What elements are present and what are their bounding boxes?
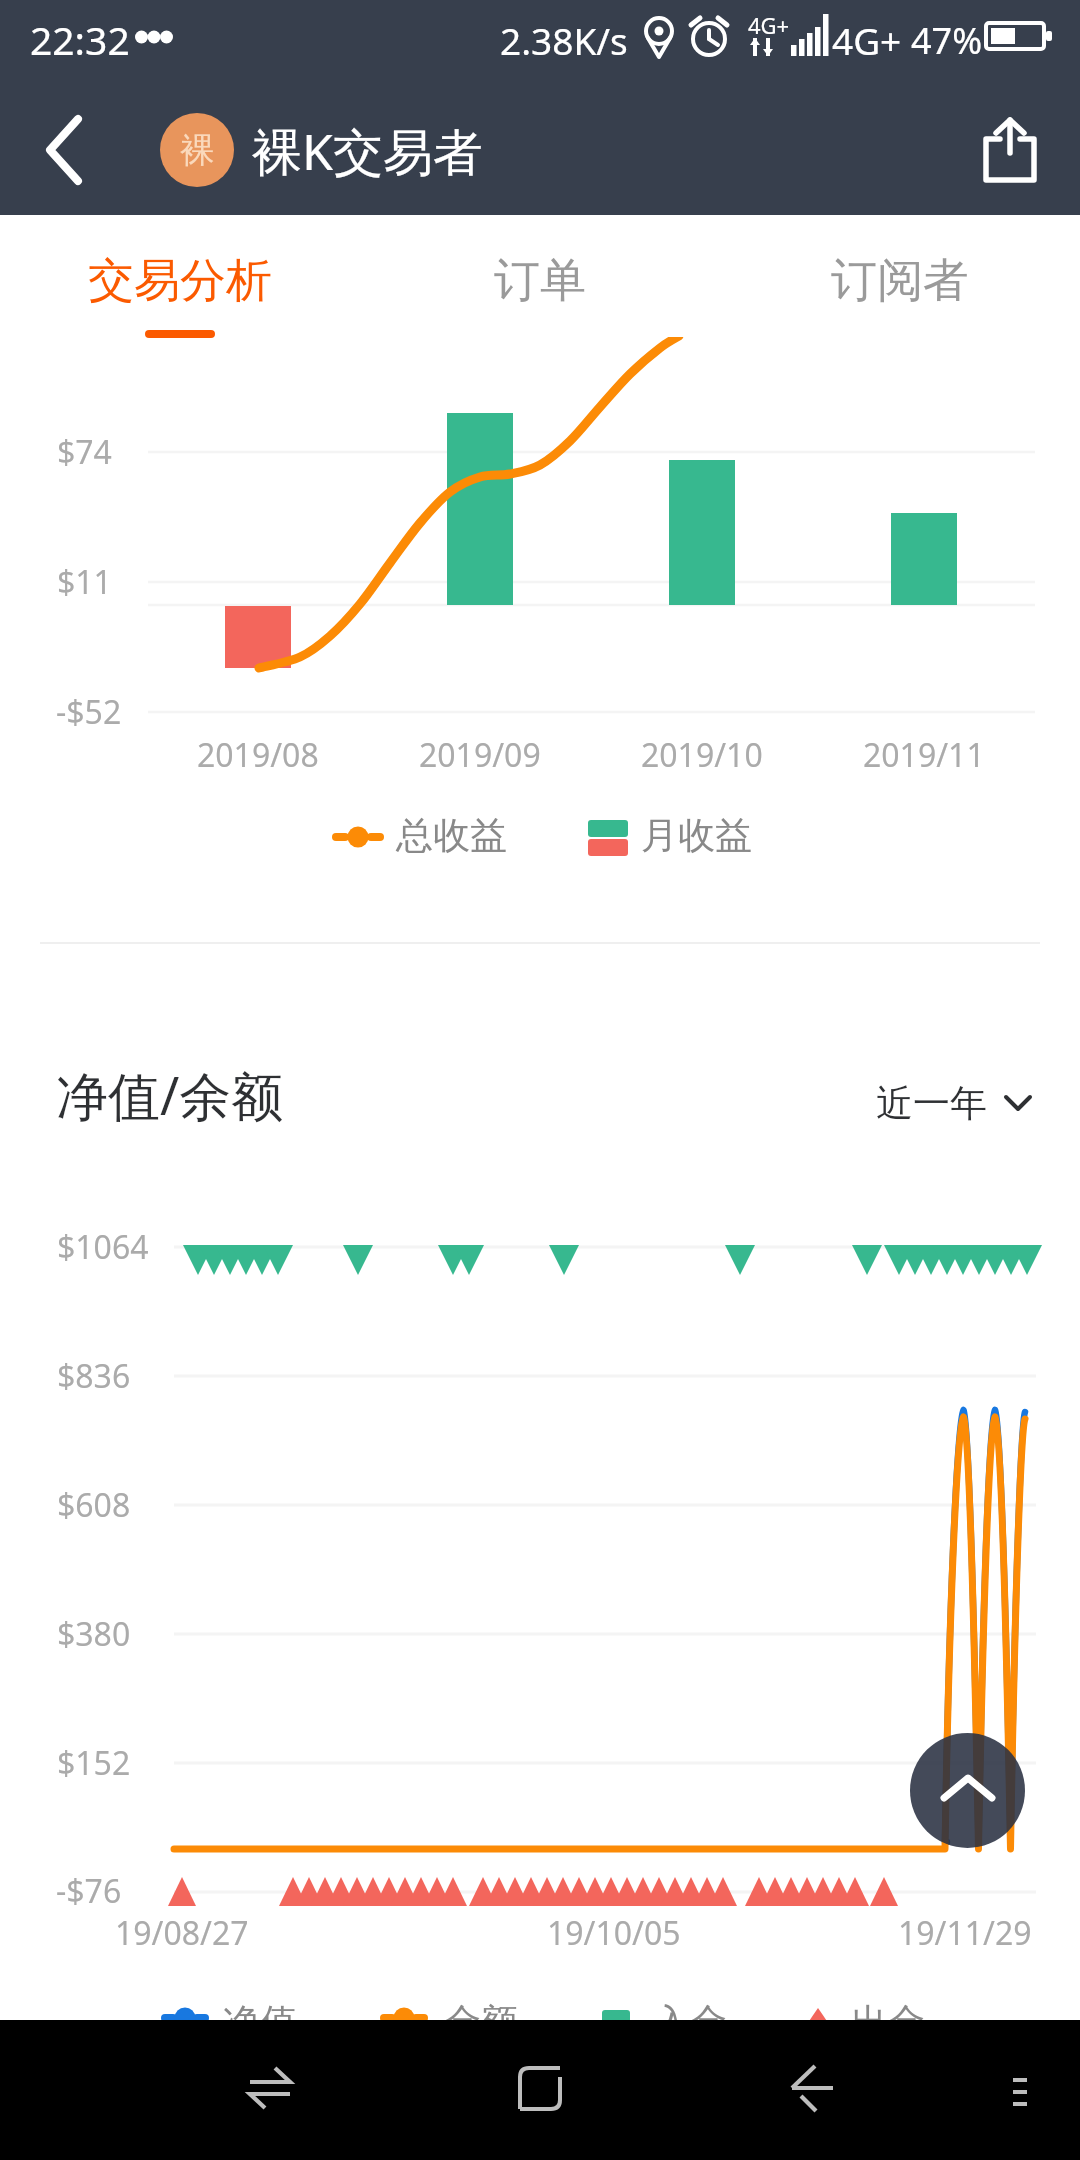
staticText: $836: [57, 1354, 131, 1398]
button[interactable]: 近一年: [862, 1068, 1042, 1138]
staticText: 裸: [180, 129, 214, 172]
button[interactable]: Back: [8, 94, 120, 206]
button[interactable]: 订阅者: [720, 215, 1080, 337]
staticText: -$76: [56, 1869, 122, 1913]
staticText: 订阅者: [831, 252, 969, 310]
staticText: 47%: [911, 16, 983, 65]
staticText: 近一年: [876, 1080, 987, 1127]
staticText: 4G+: [748, 10, 790, 40]
staticText: $380: [57, 1612, 131, 1656]
staticText: 裸K交易者: [252, 117, 483, 185]
staticText: 出金: [851, 1999, 925, 2046]
staticText: 19/11/29: [898, 1911, 1032, 1955]
button[interactable]: Switch apps: [210, 2028, 330, 2148]
button[interactable]: More options: [960, 2028, 1080, 2148]
button[interactable]: 交易分析: [0, 215, 360, 337]
staticText: -$52: [56, 690, 122, 734]
staticText: $74: [57, 430, 112, 474]
staticText: 入金: [653, 1999, 727, 2046]
staticText: 交易分析: [88, 252, 272, 310]
staticText: 4G+: [832, 15, 902, 65]
staticText: 总收益: [396, 812, 507, 859]
staticText: 2019/09: [419, 733, 541, 777]
staticText: 2.38K/s: [500, 15, 628, 65]
staticText: 2019/11: [863, 733, 985, 777]
button[interactable]: Recents: [480, 2028, 600, 2148]
staticText: 订单: [494, 252, 586, 310]
button[interactable]: Share: [954, 84, 1066, 194]
staticText: 净值: [223, 1999, 297, 2046]
staticText: 22:32: [30, 13, 130, 66]
staticText: $11: [57, 560, 112, 604]
staticText: 2019/08: [197, 733, 319, 777]
button[interactable]: Scroll to top: [910, 1733, 1025, 1848]
staticText: 2019/10: [641, 733, 763, 777]
staticText: $152: [57, 1741, 131, 1785]
staticText: 月收益: [641, 812, 752, 859]
staticText: 19/10/05: [547, 1911, 681, 1955]
staticText: 19/08/27: [115, 1911, 249, 1955]
staticText: 净值/余额: [56, 1059, 284, 1130]
staticText: $608: [57, 1483, 131, 1527]
button[interactable]: Back: [750, 2028, 870, 2148]
button[interactable]: 订单: [360, 215, 720, 337]
staticText: 金额: [444, 1999, 518, 2046]
staticText: $1064: [57, 1225, 149, 1269]
